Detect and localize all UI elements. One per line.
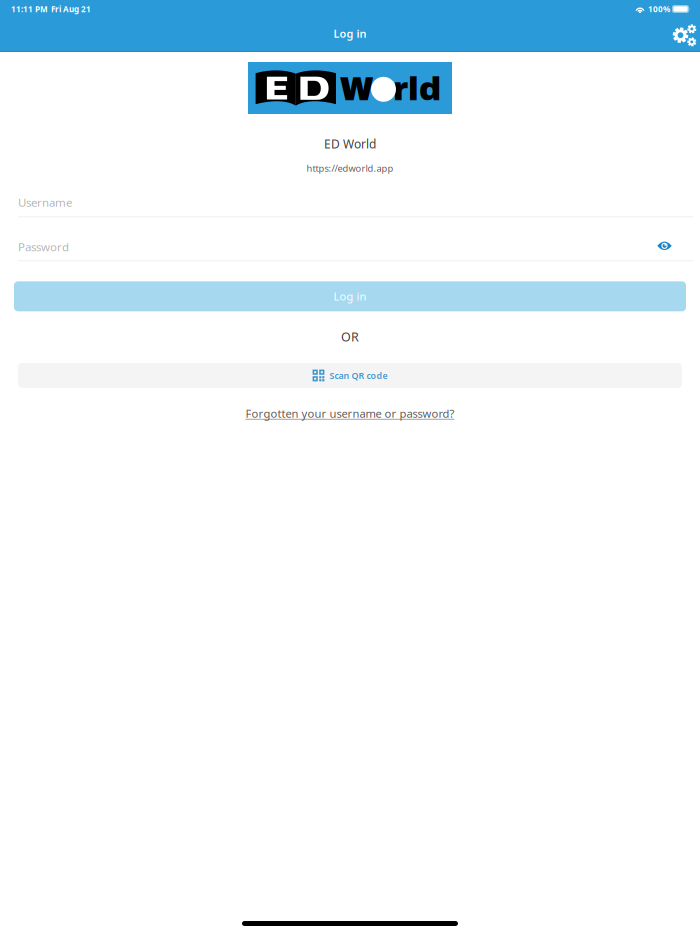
staticText: Fri Aug 21 xyxy=(51,4,91,14)
staticText: Forgotten your username or password? xyxy=(245,406,454,421)
staticText: https://edworld.app xyxy=(306,162,393,174)
button[interactable]: Settings xyxy=(673,24,697,47)
staticText: Password xyxy=(18,239,69,254)
staticText: World xyxy=(340,71,441,107)
staticText: OR xyxy=(341,328,359,345)
button[interactable]: Forgotten your username or password? xyxy=(245,406,454,421)
staticText: Username xyxy=(18,195,72,210)
staticText: 100% xyxy=(648,4,670,14)
staticText: Log in xyxy=(333,26,366,41)
staticText: ED World xyxy=(324,136,376,152)
staticText: 11:11 PM xyxy=(11,4,48,14)
staticText: Log in xyxy=(333,289,366,304)
button[interactable]: Log in xyxy=(14,281,686,311)
staticText: Scan QR code xyxy=(329,369,387,381)
button[interactable]: Scan QR code xyxy=(18,363,682,388)
button[interactable]: Show password xyxy=(657,241,672,250)
